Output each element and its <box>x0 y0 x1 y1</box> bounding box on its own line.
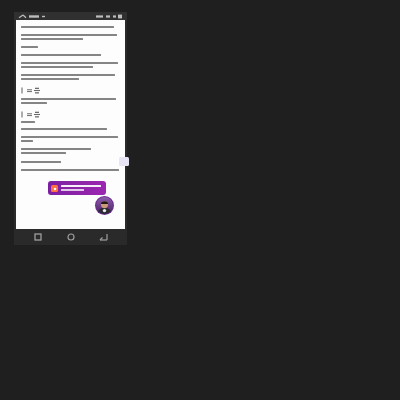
button[interactable]: Home <box>63 229 79 245</box>
button[interactable] <box>119 157 129 166</box>
button[interactable]: Tutor avatar <box>95 196 114 215</box>
button[interactable]: Recents <box>30 229 46 245</box>
button[interactable]: Back <box>95 229 111 245</box>
button[interactable] <box>48 181 106 195</box>
